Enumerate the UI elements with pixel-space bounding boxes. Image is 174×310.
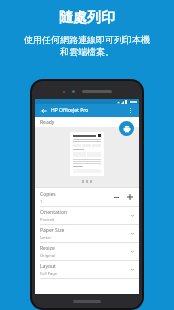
staticText: Resize xyxy=(40,245,55,252)
staticText: HP OfficeJet Pro xyxy=(51,107,89,114)
button[interactable]: Layout xyxy=(35,261,139,278)
button[interactable]: Paper Size xyxy=(35,225,139,242)
button[interactable]: Copies xyxy=(35,188,139,206)
staticText: Portrait xyxy=(40,217,55,222)
staticText: 1 xyxy=(40,199,43,204)
button[interactable]: More options xyxy=(126,106,135,115)
button[interactable]: Orientation xyxy=(35,207,139,224)
staticText: 隨處列印 xyxy=(59,9,115,27)
button[interactable]: Resize xyxy=(35,243,139,260)
button[interactable]: Increase copies xyxy=(125,192,135,202)
button[interactable]: Print xyxy=(119,121,134,136)
staticText: 使用任何網路連線即可列印本機 和雲端檔案。 xyxy=(24,34,150,58)
staticText: Original xyxy=(40,253,56,258)
staticText: Letter xyxy=(40,235,52,240)
staticText: Orientation xyxy=(40,209,67,216)
staticText: Layout xyxy=(40,263,56,270)
staticText: Full Page xyxy=(40,271,58,276)
staticText: Ready xyxy=(40,119,55,126)
button[interactable]: Back xyxy=(39,106,48,115)
staticText: Paper Size xyxy=(40,227,65,234)
button[interactable]: Decrease copies xyxy=(111,192,121,202)
staticText: Copies xyxy=(40,191,56,198)
